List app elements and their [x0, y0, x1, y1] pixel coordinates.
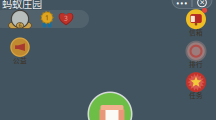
button[interactable]: Close: [192, 0, 211, 11]
button[interactable]: 公益: [7, 37, 33, 67]
staticText: ×: [199, 0, 204, 8]
button[interactable]: 任务: [183, 72, 209, 102]
staticText: 排行: [189, 59, 203, 69]
staticText: 公益: [13, 55, 27, 65]
staticText: 6: [18, 22, 21, 29]
staticText: 3: [64, 14, 68, 23]
staticText: 任务: [189, 90, 203, 100]
button[interactable]: Feed chicken: [87, 91, 133, 120]
staticText: 信箱: [189, 27, 203, 37]
button[interactable]: 信箱: [183, 9, 209, 39]
button[interactable]: More: [172, 0, 191, 11]
staticText: 1: [45, 13, 49, 22]
staticText: 蚂蚁庄园: [2, 0, 42, 11]
button[interactable]: 排行: [183, 41, 209, 71]
staticText: •••: [176, 0, 188, 9]
